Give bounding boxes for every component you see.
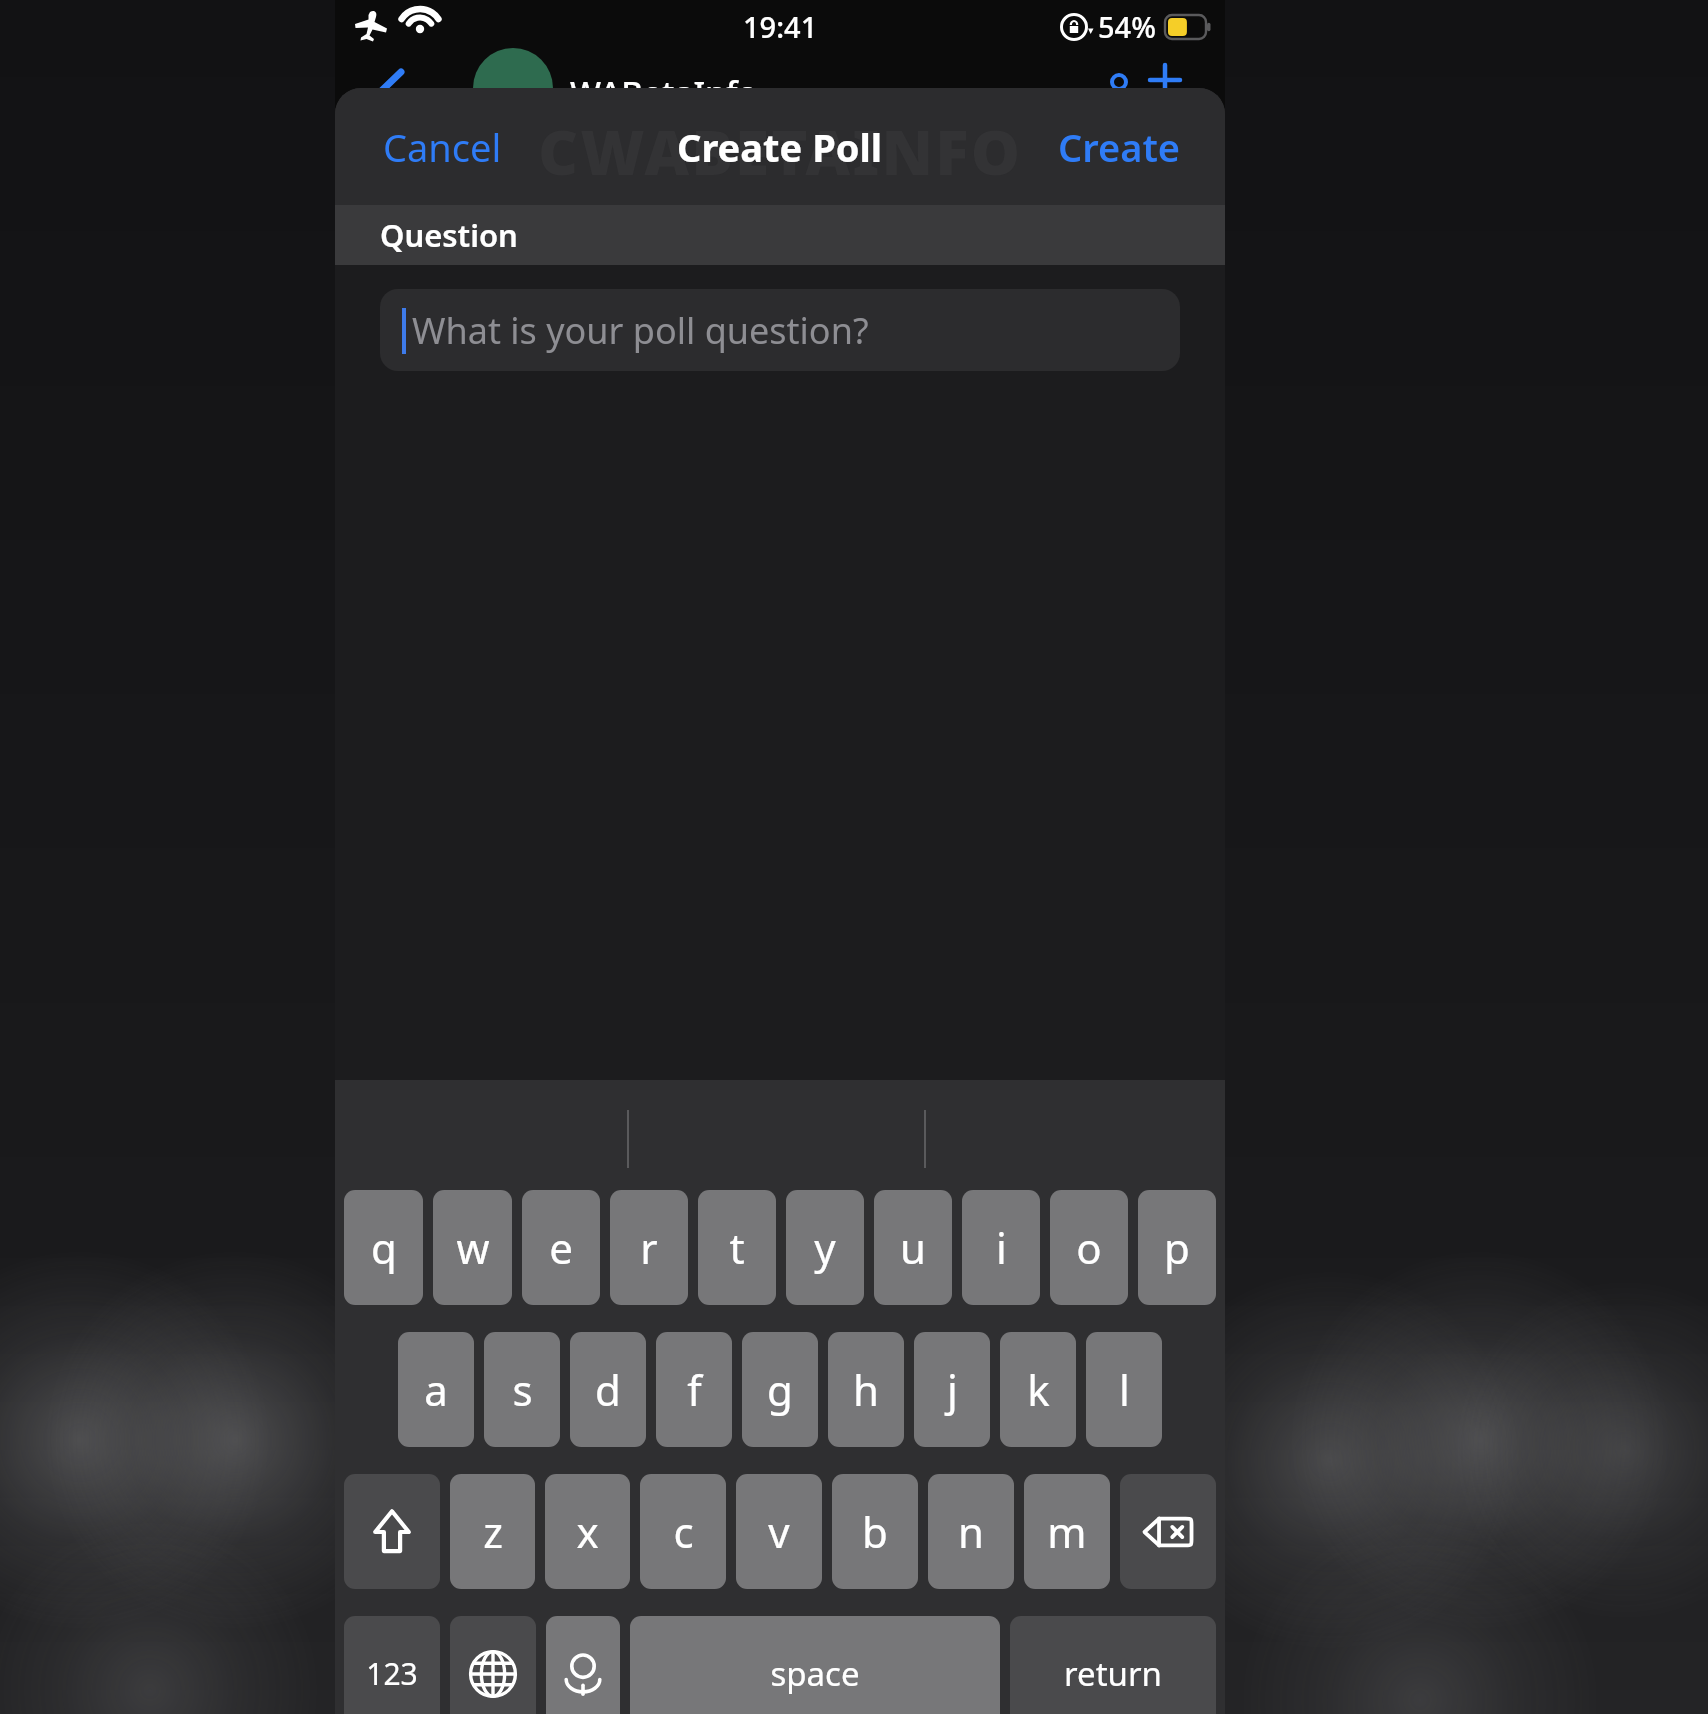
- staticText: t: [729, 1219, 745, 1276]
- button[interactable]: o: [1050, 1190, 1128, 1305]
- staticText: What is your poll question?: [412, 306, 869, 355]
- button[interactable]: 123: [344, 1616, 440, 1714]
- staticText: space: [770, 1651, 860, 1696]
- staticText: n: [958, 1503, 984, 1560]
- button[interactable]: l: [1086, 1332, 1162, 1447]
- staticText: Question: [380, 214, 518, 256]
- button[interactable]: j: [914, 1332, 990, 1447]
- staticText: CWABETAINFO: [538, 275, 1023, 359]
- button[interactable]: Backspace: [1120, 1474, 1216, 1589]
- staticText: j: [947, 1361, 958, 1418]
- staticText: m: [1047, 1503, 1087, 1560]
- staticText: s: [512, 1361, 533, 1418]
- button[interactable]: b: [832, 1474, 918, 1589]
- button[interactable]: g: [742, 1332, 818, 1447]
- button[interactable]: v: [736, 1474, 822, 1589]
- button[interactable]: p: [1138, 1190, 1216, 1305]
- staticText: l: [1119, 1361, 1130, 1418]
- button[interactable]: z: [450, 1474, 535, 1589]
- button[interactable]: c: [640, 1474, 726, 1589]
- staticText: x: [576, 1503, 599, 1560]
- button[interactable]: f: [656, 1332, 732, 1447]
- button[interactable]: q: [344, 1190, 423, 1305]
- staticText: d: [595, 1361, 621, 1418]
- button[interactable]: What is your poll question?: [380, 289, 1180, 371]
- button[interactable]: x: [545, 1474, 630, 1589]
- staticText: p: [1164, 1219, 1190, 1276]
- button[interactable]: m: [1024, 1474, 1110, 1589]
- button[interactable]: space: [630, 1616, 1000, 1714]
- staticText: 19:41: [743, 7, 818, 46]
- button[interactable]: k: [1000, 1332, 1076, 1447]
- staticText: k: [1027, 1361, 1050, 1418]
- button[interactable]: Cancel: [351, 107, 534, 187]
- button[interactable]: Shift: [344, 1474, 440, 1589]
- staticText: u: [900, 1219, 926, 1276]
- staticText: h: [853, 1361, 879, 1418]
- button[interactable]: return: [1010, 1616, 1216, 1714]
- button[interactable]: r: [610, 1190, 688, 1305]
- button[interactable]: a: [398, 1332, 474, 1447]
- button[interactable]: Dictate: [546, 1616, 620, 1714]
- staticText: 54%: [1098, 7, 1156, 46]
- button[interactable]: s: [484, 1332, 560, 1447]
- button[interactable]: u: [874, 1190, 952, 1305]
- staticText: i: [996, 1219, 1007, 1276]
- staticText: f: [687, 1361, 702, 1418]
- staticText: w: [456, 1219, 490, 1276]
- button[interactable]: Create: [1030, 107, 1209, 187]
- staticText: o: [1076, 1219, 1102, 1276]
- button[interactable]: y: [786, 1190, 864, 1305]
- button[interactable]: w: [433, 1190, 512, 1305]
- staticText: Create Poll: [677, 121, 883, 173]
- staticText: return: [1064, 1651, 1162, 1696]
- staticText: c: [673, 1503, 694, 1560]
- staticText: CWABETAINFO: [538, 109, 1023, 193]
- staticText: 123: [366, 1653, 418, 1694]
- button[interactable]: Switch keyboard: [450, 1616, 536, 1714]
- button[interactable]: i: [962, 1190, 1040, 1305]
- staticText: WABetaInfo: [570, 70, 758, 115]
- staticText: Create: [1058, 121, 1181, 173]
- button[interactable]: h: [828, 1332, 904, 1447]
- staticText: Cancel: [383, 121, 502, 173]
- button[interactable]: t: [698, 1190, 776, 1305]
- staticText: q: [371, 1219, 397, 1276]
- staticText: y: [814, 1219, 836, 1276]
- staticText: z: [483, 1503, 503, 1560]
- button[interactable]: n: [928, 1474, 1014, 1589]
- button[interactable]: d: [570, 1332, 646, 1447]
- button[interactable]: e: [522, 1190, 600, 1305]
- staticText: v: [768, 1503, 790, 1560]
- staticText: b: [862, 1503, 888, 1560]
- staticText: a: [424, 1361, 448, 1418]
- staticText: e: [549, 1219, 573, 1276]
- staticText: r: [640, 1219, 658, 1276]
- staticText: g: [767, 1361, 793, 1418]
